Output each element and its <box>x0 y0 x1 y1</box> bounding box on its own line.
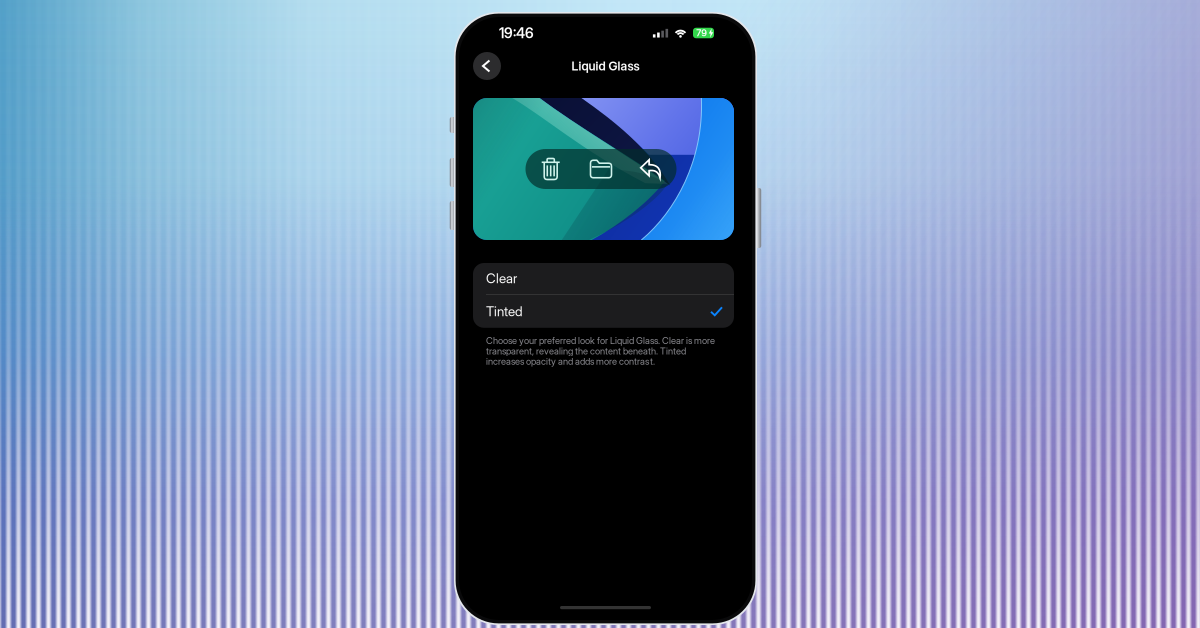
staticText: 19:46 <box>499 24 534 41</box>
button[interactable]: Tinted <box>473 295 734 328</box>
staticText: 79 <box>696 27 707 38</box>
button[interactable]: Reply <box>626 149 676 189</box>
staticText: Choose your preferred look for Liquid Gl… <box>486 335 715 367</box>
button[interactable]: Clear <box>473 263 734 294</box>
button[interactable]: Move to folder <box>576 149 626 189</box>
button[interactable]: Delete <box>525 149 576 189</box>
staticText: Tinted <box>486 303 523 319</box>
button[interactable]: Back <box>473 52 501 80</box>
staticText: Clear <box>486 270 517 286</box>
staticText: Liquid Glass <box>571 59 639 73</box>
